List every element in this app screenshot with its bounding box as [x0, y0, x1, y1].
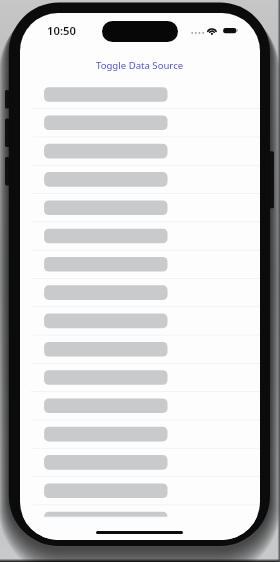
button[interactable] [20, 80, 260, 108]
button[interactable] [20, 472, 260, 500]
button[interactable]: Toggle Data Source [20, 55, 260, 76]
button[interactable] [20, 136, 260, 164]
staticText: Toggle Data Source [96, 59, 184, 72]
button[interactable] [20, 360, 260, 388]
button[interactable] [20, 416, 260, 444]
button[interactable] [20, 108, 260, 136]
staticText: 10:50 [47, 23, 76, 38]
button[interactable] [20, 248, 260, 276]
button[interactable] [20, 444, 260, 472]
button[interactable] [20, 276, 260, 304]
button[interactable] [20, 220, 260, 248]
button[interactable] [20, 164, 260, 192]
button[interactable] [20, 304, 260, 332]
button[interactable] [20, 388, 260, 416]
button[interactable] [20, 332, 260, 360]
button[interactable] [20, 192, 260, 220]
